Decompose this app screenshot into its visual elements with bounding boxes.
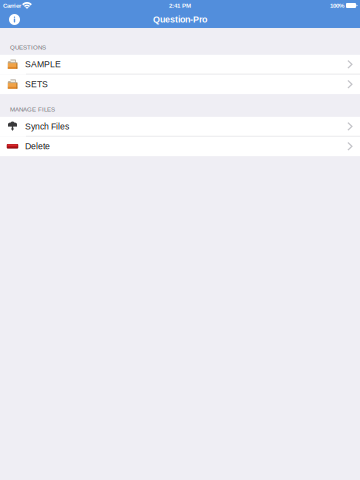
staticText: SETS [25, 79, 48, 89]
staticText: Carrier [3, 2, 21, 9]
staticText: Delete [25, 141, 50, 151]
staticText: SAMPLE [25, 59, 61, 69]
button[interactable]: Info [0, 13, 21, 26]
staticText: QUESTIONS [10, 44, 46, 51]
button[interactable]: Delete [0, 136, 360, 156]
staticText: Question-Pro [153, 14, 207, 24]
button[interactable]: SAMPLE [0, 55, 360, 74]
staticText: 2:41 PM [169, 2, 191, 9]
button[interactable]: SETS [0, 74, 360, 94]
button[interactable]: Synch Files [0, 117, 360, 136]
staticText: 100% [330, 2, 344, 9]
staticText: Synch Files [25, 122, 69, 131]
staticText: MANAGE FILES [10, 106, 55, 113]
